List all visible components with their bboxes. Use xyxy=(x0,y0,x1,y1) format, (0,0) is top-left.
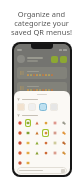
button[interactable]: Icon option xyxy=(43,130,48,136)
button[interactable]: Add menu xyxy=(60,56,67,63)
button[interactable]: Icon option xyxy=(51,119,58,127)
button[interactable] xyxy=(17,97,67,109)
button[interactable]: Color option xyxy=(28,103,36,111)
button[interactable]: Icon option xyxy=(17,119,23,127)
button[interactable]: Icon option xyxy=(25,139,31,147)
button[interactable] xyxy=(17,82,67,94)
button[interactable]: Icon option xyxy=(25,159,31,167)
button[interactable]: Profile xyxy=(17,55,25,63)
button[interactable]: Scan QR xyxy=(51,56,58,63)
button[interactable]: Icon option xyxy=(33,139,40,147)
button[interactable]: Icon option xyxy=(42,149,49,157)
button[interactable]: Icon option xyxy=(33,149,40,157)
button[interactable]: Icon option xyxy=(60,119,67,127)
button[interactable]: Color option xyxy=(39,103,47,111)
button[interactable]: Icon option xyxy=(17,139,23,147)
button[interactable]: Icon option xyxy=(60,139,67,147)
button[interactable]: Icon option xyxy=(17,159,23,167)
button[interactable]: Color option xyxy=(50,103,58,111)
button[interactable]: Icon option xyxy=(60,129,67,137)
button[interactable]: Icon option xyxy=(26,120,30,126)
button[interactable]: Icon option xyxy=(17,149,23,157)
button[interactable]: Icon option xyxy=(17,129,23,137)
button[interactable]: Icon option xyxy=(51,139,58,147)
button[interactable]: Icon option xyxy=(33,129,40,137)
button[interactable] xyxy=(17,67,67,79)
button[interactable]: Icon option xyxy=(33,119,40,127)
button[interactable]: Icon option xyxy=(51,149,58,157)
staticText: Organize and categorize your saved QR me… xyxy=(3,9,80,38)
button[interactable]: Icon option xyxy=(25,129,31,137)
button[interactable]: Icon option xyxy=(42,139,49,147)
button[interactable]: Icon option xyxy=(51,129,58,137)
button[interactable]: Icon option xyxy=(60,149,67,157)
button[interactable]: Icon option xyxy=(42,119,49,127)
button[interactable] xyxy=(17,167,67,174)
button[interactable]: Icon option xyxy=(25,149,31,157)
button[interactable]: Color option xyxy=(17,103,25,111)
